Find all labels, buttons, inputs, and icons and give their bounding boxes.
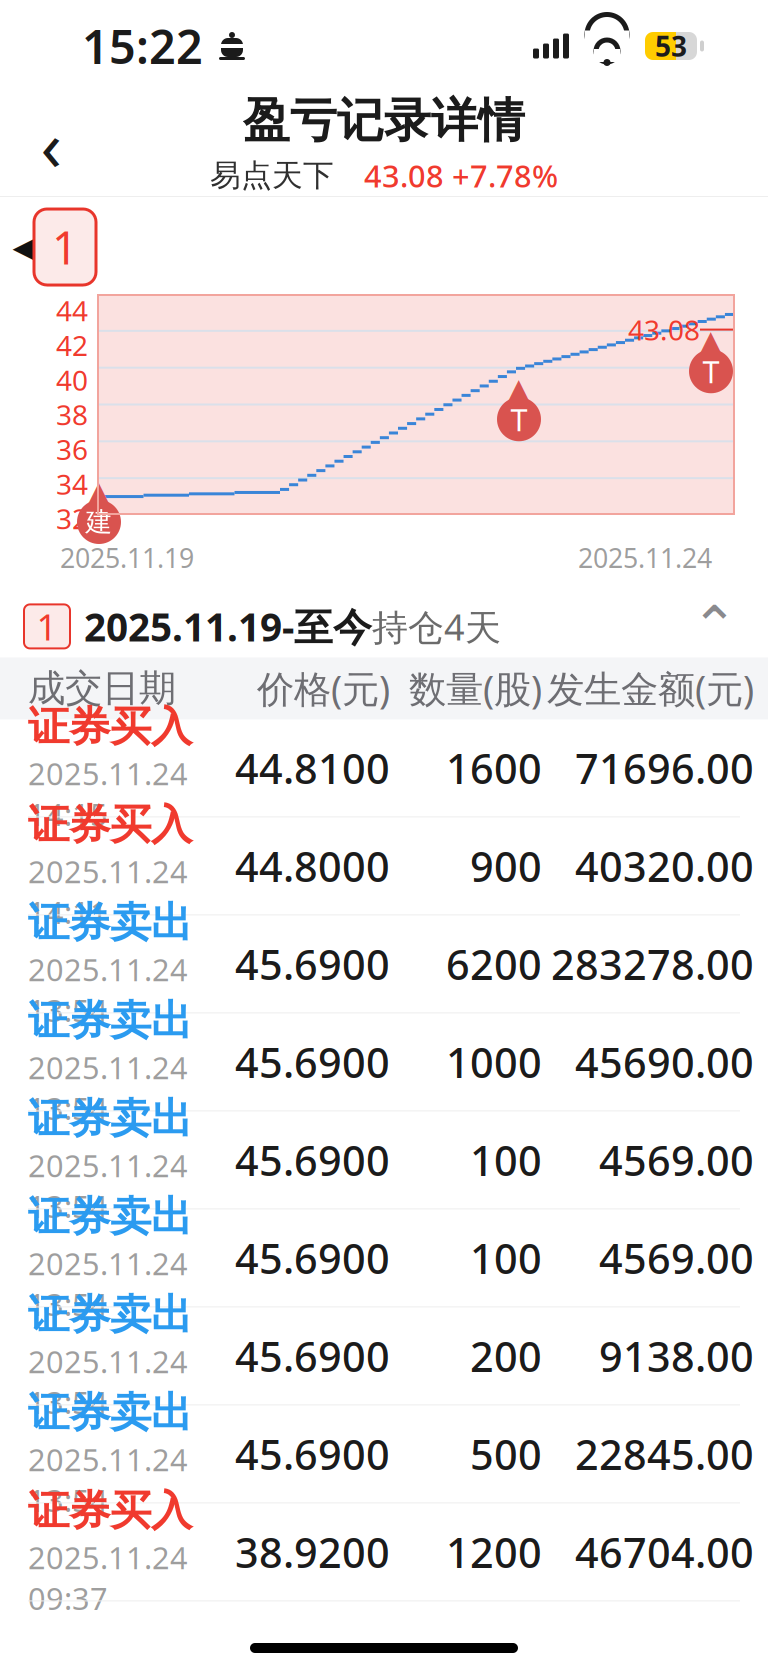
staticText: 证券买入	[28, 1485, 192, 1536]
staticText: 2025.11.24 14:11	[28, 851, 188, 932]
staticText: 证券卖出	[28, 1387, 192, 1438]
staticText: 22845.00	[575, 1426, 754, 1481]
staticText: 1600	[446, 740, 542, 795]
staticText: 证券买入	[28, 701, 192, 752]
staticText: ◀	[12, 229, 37, 265]
staticText: 36	[56, 431, 88, 468]
staticText: 44.8100	[235, 740, 390, 795]
staticText: 2025.11.24 13:54	[28, 1439, 188, 1520]
staticText: 证券卖出	[28, 1093, 192, 1144]
staticText: 43.08 +7.78%	[364, 155, 558, 196]
staticText: ▲	[88, 476, 109, 506]
staticText: 500	[470, 1426, 542, 1481]
button[interactable]: 证券买入	[0, 817, 768, 914]
staticText: 32	[56, 500, 88, 537]
staticText: 71696.00	[575, 740, 754, 795]
staticText: 44	[56, 292, 88, 329]
staticText: 2025.11.19	[60, 540, 194, 575]
staticText: 2025.11.24 14:15	[28, 753, 188, 834]
staticText: 证券卖出	[28, 995, 192, 1046]
staticText: 53	[655, 27, 687, 65]
staticText: 900	[470, 838, 542, 893]
button[interactable]: 证券卖出	[0, 1209, 768, 1306]
staticText: 发生金额(元)	[547, 664, 754, 713]
staticText: T	[510, 399, 527, 440]
staticText: 34	[56, 465, 88, 502]
staticText: 100	[470, 1230, 542, 1285]
staticText: 45.6900	[235, 1328, 390, 1383]
button[interactable]: 证券卖出	[0, 1307, 768, 1404]
button[interactable]: 证券卖出	[0, 1405, 768, 1502]
staticText: 100	[470, 1132, 542, 1187]
staticText: 45.6900	[235, 1426, 390, 1481]
staticText: 283278.00	[551, 936, 754, 991]
staticText: 2025.11.24	[578, 540, 712, 575]
staticText: 证券卖出	[28, 1191, 192, 1242]
staticText: 2025.11.24 09:37	[28, 1537, 188, 1618]
staticText: 200	[470, 1328, 542, 1383]
staticText: 40	[56, 361, 88, 398]
staticText: 1	[36, 602, 57, 650]
staticText: 38	[56, 396, 88, 433]
button[interactable]: 1	[0, 595, 768, 657]
staticText: 成交日期	[28, 665, 176, 711]
button[interactable]: 证券买入	[0, 1503, 768, 1600]
staticText: 40320.00	[575, 838, 754, 893]
staticText: 4569.00	[599, 1230, 754, 1285]
staticText: ‹	[40, 98, 61, 190]
button[interactable]: 证券卖出	[0, 915, 768, 1012]
staticText: 45.6900	[235, 936, 390, 991]
staticText: 42	[56, 327, 88, 364]
staticText: 证券买入	[28, 799, 192, 850]
staticText: 45.6900	[235, 1230, 390, 1285]
staticText: 1	[52, 217, 78, 277]
staticText: 盈亏记录详情	[243, 92, 525, 149]
staticText: 45690.00	[575, 1034, 754, 1089]
staticText: 4569.00	[599, 1132, 754, 1187]
staticText: 数量(股)	[409, 664, 542, 713]
staticText: 46704.00	[575, 1524, 754, 1579]
staticText: 44.8000	[235, 838, 390, 893]
staticText: 2025.11.19-至今	[84, 601, 372, 652]
staticText: 价格(元)	[257, 664, 390, 713]
staticText: 45.6900	[235, 1132, 390, 1187]
staticText: ⌃	[691, 595, 738, 658]
staticText: 2025.11.24 13:54	[28, 1145, 188, 1226]
staticText: 2025.11.24 13:54	[28, 949, 188, 1030]
staticText: ▲	[700, 325, 721, 355]
button[interactable]: 返回	[12, 105, 90, 183]
staticText: 15:22	[82, 15, 203, 77]
staticText: T	[702, 351, 719, 392]
staticText: 43.08	[628, 311, 700, 348]
staticText: 2025.11.24 13:54	[28, 1047, 188, 1128]
button[interactable]: 证券卖出	[0, 1111, 768, 1208]
staticText: 6200	[446, 936, 542, 991]
staticText: 建	[85, 506, 112, 538]
staticText: 2025.11.24 13:54	[28, 1243, 188, 1324]
staticText: 38.9200	[235, 1524, 390, 1579]
staticText: 9138.00	[599, 1328, 754, 1383]
staticText: 2025.11.24 13:54	[28, 1341, 188, 1422]
staticText: 证券卖出	[28, 897, 192, 948]
staticText: 易点天下	[210, 157, 334, 194]
staticText: 1200	[446, 1524, 542, 1579]
staticText: 证券卖出	[28, 1289, 192, 1340]
staticText: 持仓4天	[372, 602, 501, 650]
button[interactable]: 证券买入	[0, 719, 768, 816]
button[interactable]: 证券卖出	[0, 1013, 768, 1110]
staticText: 45.6900	[235, 1034, 390, 1089]
staticText: 1000	[446, 1034, 542, 1089]
staticText: ▲	[508, 373, 529, 403]
